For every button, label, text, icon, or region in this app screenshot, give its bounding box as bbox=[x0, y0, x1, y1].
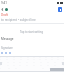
staticText: Draft bbox=[1, 13, 9, 17]
button[interactable]: Send bbox=[58, 7, 62, 12]
staticText: 9:41 bbox=[1, 1, 7, 5]
staticText: Signature bbox=[1, 46, 13, 50]
button[interactable]: Back bbox=[0, 7, 4, 11]
staticText: Message bbox=[1, 37, 14, 41]
staticText: to recipient • subject line bbox=[1, 18, 36, 22]
staticText: Tap to start writing bbox=[20, 30, 44, 34]
button[interactable]: Attach bbox=[4, 7, 8, 11]
